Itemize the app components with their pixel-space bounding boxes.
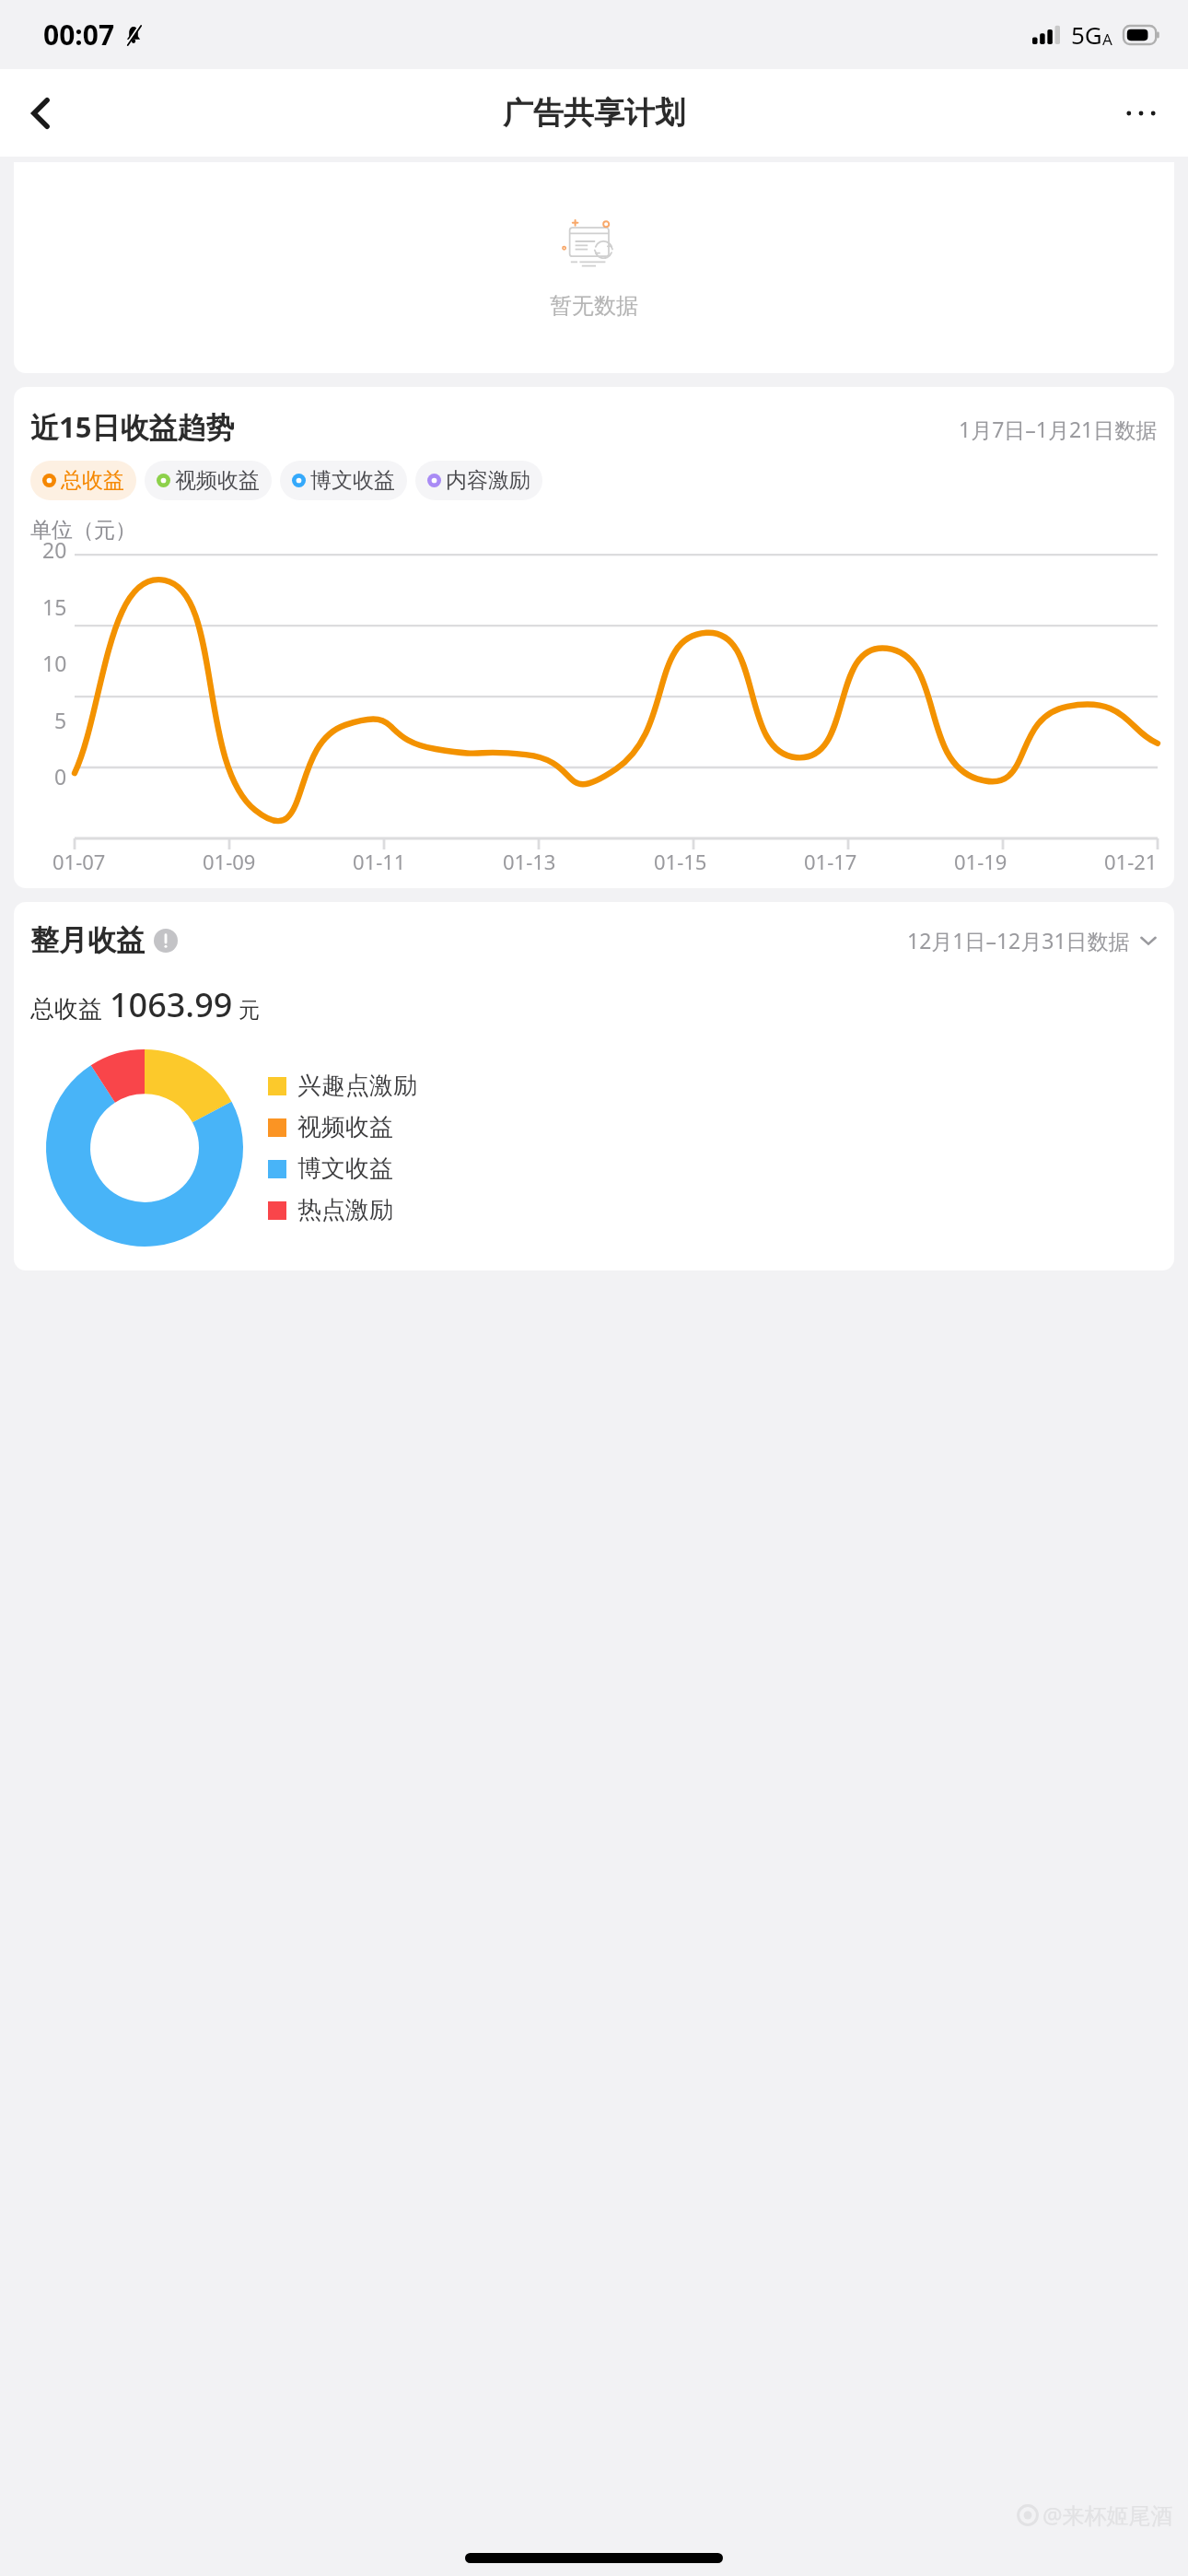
staticText: 1月7日–1月21日数据 [959,415,1158,443]
button[interactable]: 视频收益 [268,1112,393,1142]
staticText: 总收益 [61,467,124,494]
staticText: 01-09 [203,848,256,875]
staticText: 兴趣点激励 [297,1071,417,1101]
staticText: 0 [54,762,67,790]
button[interactable]: 兴趣点激励 [268,1071,417,1101]
staticText: 12月1日–12月31日数据 [907,926,1130,954]
staticText: 暂无数据 [550,292,638,320]
button[interactable]: 总收益 [30,461,136,500]
staticText: 热点激励 [297,1195,393,1225]
staticText: 博文收益 [310,467,395,494]
staticText: 01-13 [503,848,556,875]
button[interactable]: 热点激励 [268,1195,393,1225]
staticText: 整月收益 [30,922,145,958]
staticText: A [1102,29,1112,50]
button[interactable]: 博文收益 [268,1153,393,1184]
staticText: 1063.99 [110,982,233,1027]
button[interactable]: 视频收益 [145,461,272,500]
staticText: 10 [42,649,67,677]
staticText: 00:07 [43,16,115,53]
button[interactable]: Back [9,81,74,146]
button[interactable]: Info [152,927,180,954]
button[interactable]: 12月1日–12月31日数据 [907,926,1158,954]
staticText: 视频收益 [297,1112,393,1142]
staticText: 单位（元） [30,517,136,544]
staticText: 总收益 [30,994,102,1025]
staticText: 近15日收益趋势 [30,407,235,446]
button[interactable]: 内容激励 [415,461,542,500]
staticText: 01-07 [52,848,106,875]
staticText: 元 [239,997,260,1024]
staticText: 视频收益 [175,467,260,494]
staticText: 5 [54,706,67,734]
staticText: 01-21 [1104,848,1158,875]
staticText: 内容激励 [446,467,530,494]
staticText: 01-17 [804,848,857,875]
staticText: 01-19 [954,848,1007,875]
staticText: @来杯姬尾酒 [1042,2500,1173,2530]
staticText: 博文收益 [297,1153,393,1184]
button[interactable]: More options [1109,81,1173,146]
staticText: 01-15 [654,848,707,875]
staticText: 01-11 [353,848,406,875]
staticText: 15 [42,592,67,621]
staticText: 20 [42,535,67,564]
staticText: 5G [1071,18,1102,51]
staticText: 广告共享计划 [503,94,685,133]
button[interactable]: 博文收益 [280,461,407,500]
